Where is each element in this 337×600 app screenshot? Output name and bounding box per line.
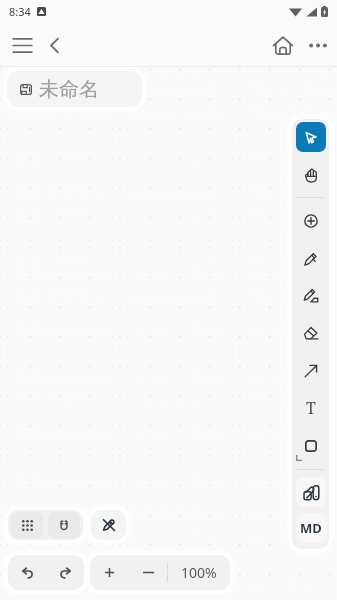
staticText: 8:34 (9, 4, 31, 19)
button[interactable]: Add image (296, 206, 326, 236)
button[interactable]: 100% (168, 555, 230, 590)
button[interactable]: Undo (8, 555, 46, 590)
button[interactable]: Back (41, 32, 68, 59)
staticText: 未命名 (39, 77, 99, 102)
button[interactable]: Snap to objects (48, 512, 80, 538)
button[interactable]: Arrow (296, 356, 326, 386)
button[interactable]: Eraser (296, 318, 326, 348)
button[interactable]: Redo (46, 555, 84, 590)
button[interactable]: 未命名 (7, 71, 142, 107)
button[interactable]: Menu (4, 27, 41, 64)
button[interactable]: Home (263, 26, 302, 65)
button[interactable]: Zoom in (90, 555, 129, 590)
button[interactable]: Pan tool (296, 160, 326, 190)
staticText: T (306, 397, 316, 419)
button[interactable]: Freedraw (296, 244, 326, 274)
button[interactable]: Zoom out (129, 555, 167, 590)
button[interactable]: Rectangle (296, 431, 326, 461)
staticText: 100% (181, 563, 217, 582)
button[interactable]: MD (296, 513, 326, 543)
button[interactable]: Text (296, 393, 326, 423)
button[interactable]: Toggle grid (11, 512, 43, 538)
button[interactable]: Selection tool (296, 122, 326, 152)
staticText: MD (300, 519, 322, 537)
button[interactable]: Colors (296, 477, 326, 507)
button[interactable]: Highlighter (296, 281, 326, 311)
button[interactable]: More options (302, 29, 334, 61)
button[interactable]: Laser pointer (91, 510, 126, 540)
